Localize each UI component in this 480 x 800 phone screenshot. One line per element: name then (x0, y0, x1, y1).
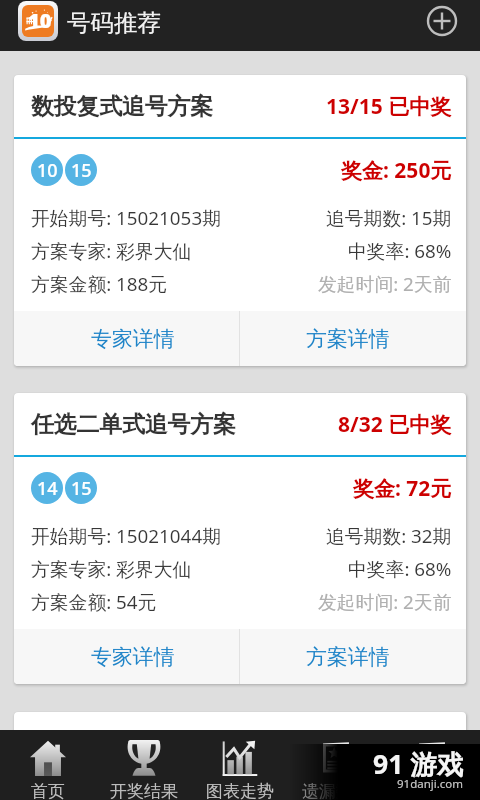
button[interactable]: 方案详情 (240, 311, 466, 366)
staticText: 追号期数: 15期 (326, 205, 452, 231)
staticText: 追号期数: 32期 (326, 523, 452, 549)
staticText: 专家详情 (91, 644, 175, 670)
staticText: 发起时间: 2天前 (318, 589, 452, 615)
staticText: 遗漏数据 (302, 781, 370, 800)
staticText: 13/15 已中奖 (326, 92, 452, 121)
staticText: 我的 (415, 781, 449, 800)
staticText: 数投复式追号方案 (31, 92, 213, 121)
button[interactable]: 遗漏数据 (288, 730, 384, 800)
staticText: 方案详情 (306, 326, 390, 352)
staticText: 专家详情 (91, 326, 175, 352)
staticText: 发起时间: 2天前 (318, 271, 452, 297)
staticText: 开始期号: 15021053期 (31, 205, 221, 231)
staticText: 8/32 已中奖 (338, 410, 452, 439)
staticText: 任选二单式追号方案 (31, 410, 236, 439)
staticText: 15 (71, 158, 92, 183)
staticText: 首页 (31, 781, 65, 800)
staticText: 10 (37, 158, 58, 183)
staticText: 91 游戏 (373, 746, 464, 782)
button[interactable]: 开奖结果 (96, 730, 192, 800)
staticText: 91danji.com (397, 776, 464, 792)
staticText: 方案金额: 54元 (31, 589, 157, 615)
button[interactable]: 我的 (384, 730, 480, 800)
button[interactable]: 方案详情 (240, 629, 466, 684)
staticText: 开始期号: 15021044期 (31, 523, 221, 549)
staticText: 10 (28, 7, 52, 34)
staticText: 中奖率: 68% (348, 238, 452, 264)
staticText: 奖金: 250元 (341, 156, 452, 185)
staticText: 奖金: 72元 (353, 474, 452, 503)
button[interactable]: 图表走势 (192, 730, 288, 800)
staticText: 号码推荐 (67, 8, 161, 38)
staticText: 方案专家: 彩界大仙 (31, 238, 192, 264)
staticText: 方案专家: 彩界大仙 (31, 556, 192, 582)
button[interactable]: 专家详情 (14, 311, 239, 366)
button[interactable]: 专家详情 (14, 629, 239, 684)
staticText: 方案金额: 188元 (31, 271, 168, 297)
staticText: 方案详情 (306, 644, 390, 670)
button[interactable]: 首页 (0, 730, 96, 800)
staticText: 中奖率: 68% (348, 556, 452, 582)
staticText: 14 (37, 476, 58, 501)
button[interactable]: 添加 (425, 4, 459, 38)
staticText: 图表走势 (206, 781, 274, 800)
staticText: 15 (71, 476, 92, 501)
staticText: 开奖结果 (110, 781, 178, 800)
